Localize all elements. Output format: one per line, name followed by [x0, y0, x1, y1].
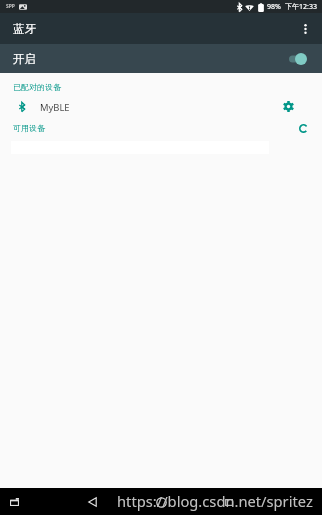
button[interactable]: MyBLE	[0, 96, 322, 118]
staticText: 已配对的设备	[13, 82, 61, 92]
button[interactable]: 开启	[0, 44, 322, 73]
button[interactable]: More options	[293, 16, 318, 41]
staticText: 98%	[267, 2, 281, 12]
button[interactable]: Home	[151, 492, 172, 513]
button[interactable]: Device settings	[277, 95, 299, 117]
button[interactable]: Back	[82, 491, 103, 512]
staticText: SPP	[6, 3, 15, 10]
button[interactable]: Recent apps	[4, 491, 25, 512]
staticText: MyBLE	[40, 101, 70, 114]
button[interactable]: Screenshot	[218, 492, 239, 513]
staticText: 开启	[13, 52, 36, 66]
staticText: 蓝牙	[13, 22, 36, 36]
staticText: 下午12:33	[285, 2, 317, 12]
staticText: 可用设备	[13, 123, 45, 133]
button[interactable]: Scanning for devices	[295, 123, 311, 134]
staticText: https://blog.csdn.net/spritez	[117, 491, 313, 511]
